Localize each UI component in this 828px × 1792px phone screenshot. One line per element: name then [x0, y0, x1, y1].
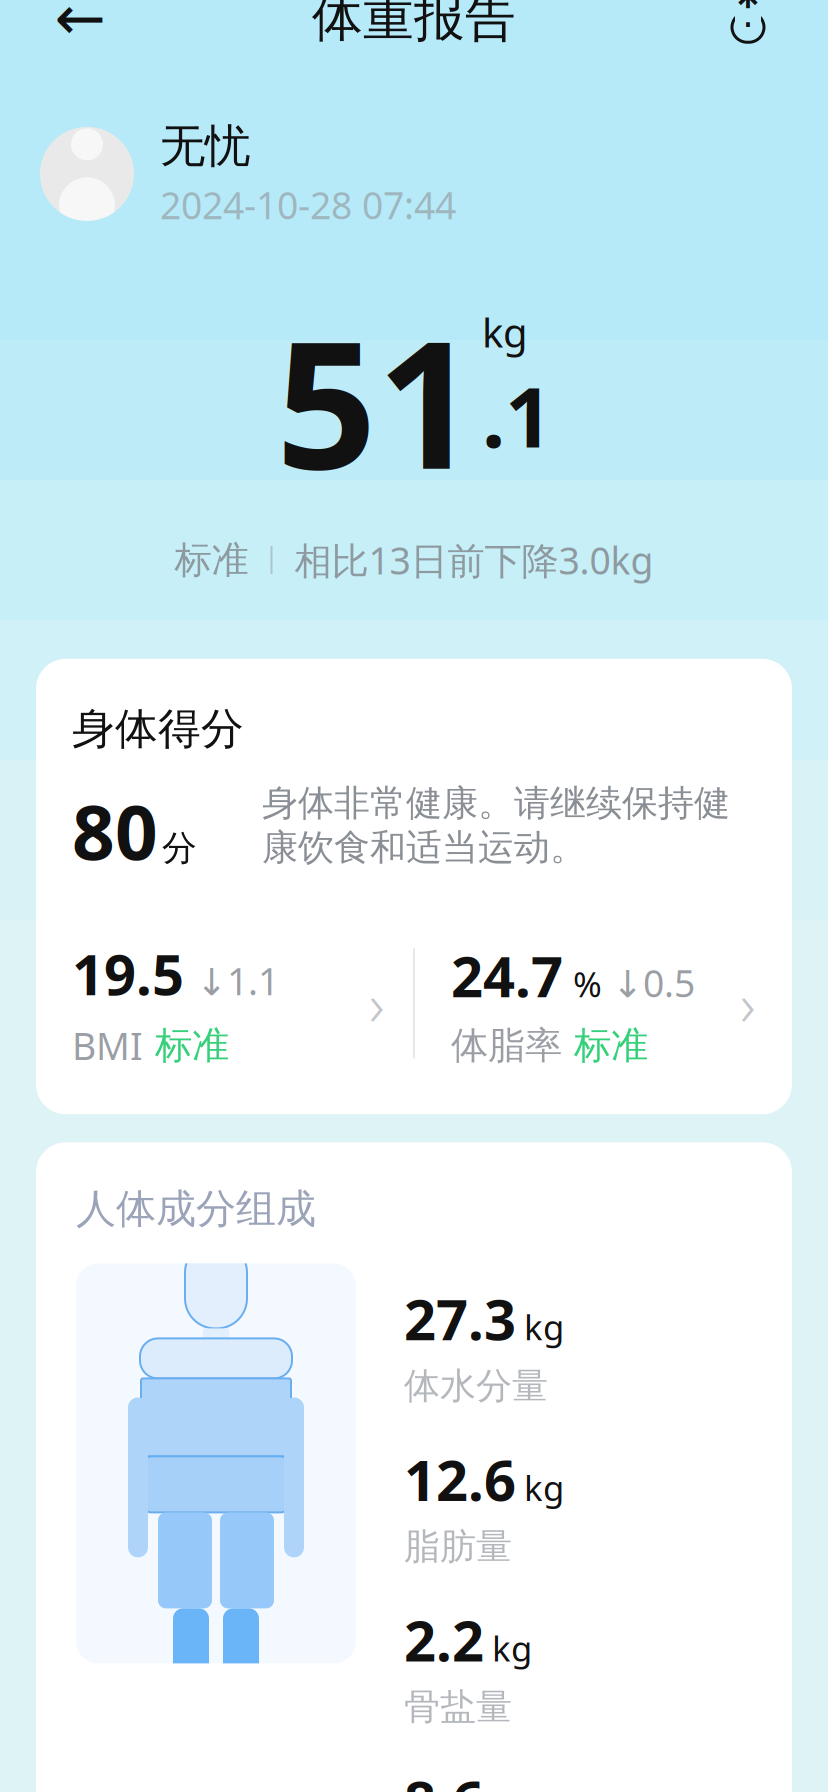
- staticText: 80: [72, 781, 158, 880]
- staticText: 人体成分组成: [76, 1184, 316, 1233]
- staticText: kg: [524, 1304, 564, 1350]
- staticText: 标准: [174, 537, 248, 583]
- staticText: 2.2: [404, 1603, 484, 1677]
- staticText: 骨盐量: [404, 1685, 512, 1729]
- staticText: 标准: [155, 1023, 229, 1068]
- staticText: 8.6: [404, 1763, 484, 1792]
- staticText: 12.6: [404, 1442, 516, 1516]
- button[interactable]: 24.7: [415, 938, 756, 1068]
- staticText: 体脂率: [451, 1023, 562, 1068]
- staticText: 24.7: [451, 938, 563, 1013]
- staticText: 无忧: [160, 118, 250, 174]
- staticText: 体水分量: [404, 1364, 548, 1408]
- staticText: 分: [162, 827, 197, 869]
- staticText: 身体得分: [72, 703, 244, 755]
- staticText: 身体非常健康。请继续保持健康饮食和适当运动。: [262, 781, 730, 870]
- staticText: 脂肪量: [404, 1524, 512, 1569]
- staticText: %: [573, 961, 602, 1007]
- staticText: 体重报告: [312, 0, 516, 49]
- staticText: kg: [482, 305, 528, 359]
- staticText: kg: [524, 1464, 564, 1510]
- staticText: ↓0.5: [612, 958, 695, 1007]
- staticText: 标准: [574, 1023, 648, 1068]
- staticText: 27.3: [404, 1281, 516, 1356]
- button[interactable]: Back: [40, 0, 120, 58]
- staticText: ›: [369, 964, 385, 1042]
- staticText: ↓1.1: [196, 956, 279, 1006]
- staticText: ↑: [729, 0, 767, 37]
- staticText: kg: [492, 1625, 532, 1671]
- button[interactable]: 19.5: [72, 936, 413, 1070]
- staticText: .1: [482, 361, 552, 470]
- staticText: 51: [276, 283, 478, 517]
- staticText: 19.5: [72, 936, 184, 1011]
- staticText: 相比13日前下降3.0kg: [294, 535, 653, 585]
- staticText: ›: [740, 964, 756, 1042]
- staticText: BMI: [72, 1021, 143, 1070]
- staticText: ←: [54, 0, 105, 53]
- button[interactable]: Share: [708, 0, 788, 58]
- staticText: 2024-10-28 07:44: [160, 180, 456, 229]
